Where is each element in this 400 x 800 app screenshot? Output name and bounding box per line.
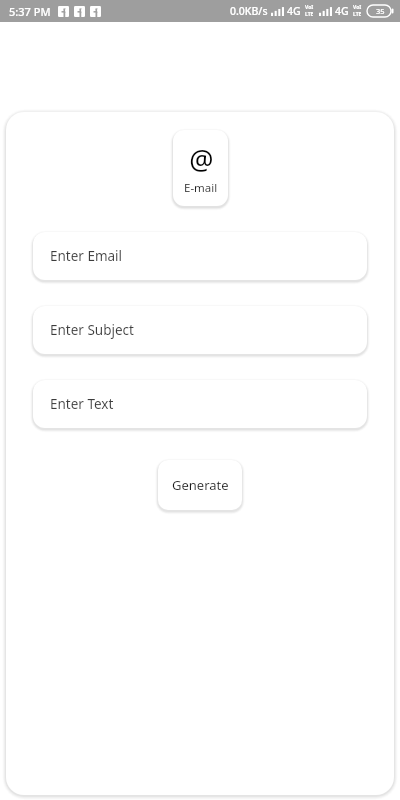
staticText: E-mail (184, 180, 218, 196)
staticText: VoI (353, 4, 362, 11)
staticText: 0.0KB/s (230, 4, 268, 18)
button[interactable]: Enter Subject (33, 306, 367, 354)
button[interactable]: Enter Text (33, 380, 367, 428)
button[interactable]: E-mail (173, 130, 228, 206)
staticText: Generate (172, 476, 229, 494)
staticText: 4G (335, 4, 349, 18)
staticText: 35 (376, 6, 385, 16)
staticText: 5:37 PM (9, 4, 51, 19)
staticText: LTE (353, 11, 362, 18)
staticText: 4G (287, 4, 301, 18)
staticText: LTE (305, 11, 314, 18)
staticText: VoI (305, 4, 314, 11)
staticText: Enter Email (50, 247, 123, 265)
staticText: @ (189, 141, 214, 178)
staticText: Enter Subject (50, 321, 134, 339)
staticText: Enter Text (50, 395, 114, 413)
button[interactable]: Enter Email (33, 232, 367, 280)
button[interactable]: Generate (158, 460, 242, 510)
